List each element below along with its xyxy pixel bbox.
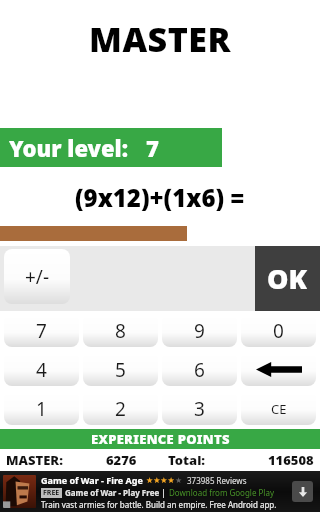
staticText: Download from Google Play — [169, 487, 274, 498]
button[interactable]: 0 — [241, 315, 316, 347]
staticText: OK — [267, 260, 308, 297]
button[interactable]: 1 — [4, 392, 79, 425]
button[interactable]: 5 — [83, 353, 158, 386]
button[interactable]: 7 — [4, 315, 79, 347]
button[interactable]: 6 — [162, 353, 237, 386]
button[interactable]: EXPERIENCE POINTS — [0, 429, 320, 449]
staticText: Train vast armies for battle. Build an e… — [41, 499, 277, 510]
staticText: Game of War - Play Free | — [65, 487, 166, 498]
button[interactable]: 2 — [83, 392, 158, 425]
staticText: 5 — [115, 357, 126, 383]
staticText: 9 — [194, 318, 205, 344]
staticText: 6276 — [106, 451, 137, 469]
staticText: 0 — [273, 318, 284, 344]
staticText: 373985 Reviews — [187, 475, 247, 486]
staticText: 4 — [36, 357, 47, 383]
button[interactable]: +/- — [4, 249, 70, 304]
button[interactable]: Download — [292, 481, 313, 502]
staticText: Your level: — [9, 133, 129, 163]
staticText: 7 — [146, 133, 159, 163]
staticText: EXPERIENCE POINTS — [91, 430, 230, 448]
staticText: 3 — [194, 396, 205, 422]
button[interactable]: 9 — [162, 315, 237, 347]
staticText: ★★★★ — [146, 476, 175, 485]
staticText: ★ — [175, 476, 183, 485]
button[interactable]: 3 — [162, 392, 237, 425]
staticText: FREE — [43, 488, 60, 498]
staticText: MASTER: — [6, 451, 63, 469]
button[interactable]: CE — [241, 392, 316, 425]
staticText: Total: — [168, 451, 206, 469]
button[interactable]: Backspace — [241, 353, 316, 386]
staticText: MASTER — [89, 16, 231, 62]
staticText: Game of War - Fire Age — [41, 474, 143, 486]
button[interactable]: Game of War - Fire Age — [0, 471, 320, 512]
button[interactable]: 8 — [83, 315, 158, 347]
button[interactable]: 4 — [4, 353, 79, 386]
staticText: 1 — [36, 396, 47, 422]
staticText: 116508 — [268, 451, 314, 469]
button[interactable]: Your level: — [0, 128, 222, 167]
staticText: (9x12)+(1x6) = — [75, 181, 245, 214]
staticText: CE — [271, 400, 287, 418]
staticText: +/- — [25, 264, 50, 290]
staticText: 2 — [115, 396, 126, 422]
staticText: 8 — [115, 318, 126, 344]
staticText: 7 — [36, 318, 47, 344]
button[interactable]: OK — [255, 246, 320, 311]
staticText: 6 — [194, 357, 205, 383]
